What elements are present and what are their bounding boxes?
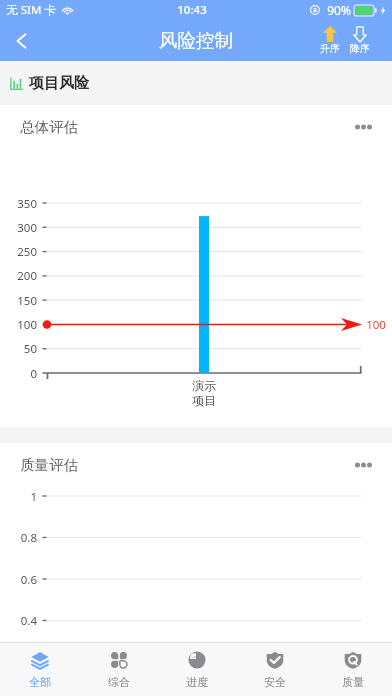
staticText: 综合 [108, 675, 130, 689]
staticText: 风险控制 [159, 29, 233, 52]
staticText: 300 [0, 220, 37, 236]
button[interactable]: 全部 [0, 643, 79, 696]
staticText: 200 [0, 268, 37, 284]
staticText: 0 [0, 366, 37, 382]
staticText: 100 [0, 317, 37, 333]
button[interactable]: Sort descending [350, 25, 370, 56]
staticText: 250 [0, 244, 37, 260]
staticText: 质量 [342, 675, 364, 689]
staticText: 全部 [29, 675, 51, 689]
staticText: 1 [0, 489, 37, 505]
staticText: 0.8 [0, 530, 37, 546]
staticText: 项目风险 [29, 74, 89, 93]
staticText: 无 SIM 卡 [6, 2, 56, 18]
staticText: 总体评估 [20, 118, 78, 136]
button[interactable]: 进度 [158, 643, 236, 696]
staticText: 150 [0, 293, 37, 309]
staticText: 0.6 [0, 572, 37, 588]
button[interactable]: 质量 [314, 643, 392, 696]
button[interactable]: 安全 [236, 643, 314, 696]
staticText: 安全 [264, 675, 286, 689]
staticText: 10:43 [177, 2, 207, 18]
staticText: 项目 [192, 393, 216, 408]
staticText: 0.4 [0, 613, 37, 629]
staticText: 降序 [350, 42, 370, 55]
staticText: 升序 [320, 42, 340, 55]
staticText: 90% [327, 2, 351, 18]
staticText: 演示 [192, 378, 216, 393]
staticText: 50 [0, 341, 37, 357]
button[interactable]: More options [349, 118, 378, 136]
staticText: 100 [366, 317, 386, 333]
staticText: 质量评估 [20, 456, 78, 474]
button[interactable]: Back [0, 20, 44, 61]
button[interactable]: 综合 [79, 643, 158, 696]
staticText: 350 [0, 196, 37, 212]
staticText: 进度 [186, 675, 208, 689]
button[interactable]: More options [349, 456, 378, 474]
button[interactable]: Sort ascending [320, 25, 340, 56]
